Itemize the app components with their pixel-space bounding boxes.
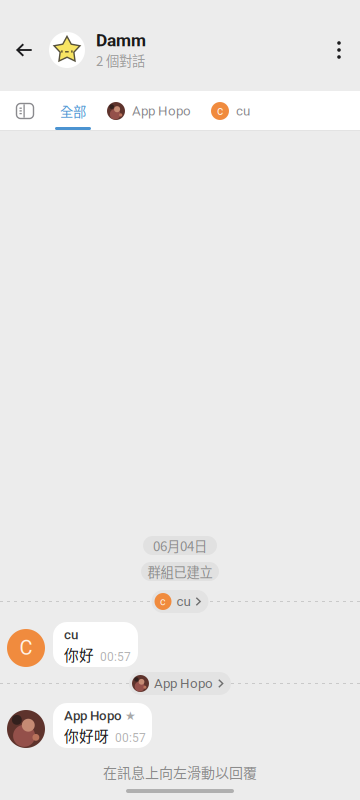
- staticText: 你好: [64, 644, 94, 665]
- staticText: App Hopo: [132, 103, 191, 119]
- button[interactable]: Back: [0, 22, 49, 78]
- button[interactable]: cu profile picture: [7, 629, 45, 667]
- button[interactable]: c: [151, 590, 208, 613]
- button[interactable]: App Hopo: [53, 703, 152, 748]
- staticText: ★: [125, 709, 136, 723]
- staticText: 00:57: [100, 650, 131, 664]
- button[interactable]: App Hopo: [129, 672, 231, 695]
- button[interactable]: App Hopo: [96, 91, 202, 131]
- staticText: c: [160, 595, 166, 608]
- button[interactable]: More options: [318, 22, 360, 78]
- staticText: C: [19, 636, 32, 660]
- staticText: c: [217, 104, 223, 118]
- button[interactable]: c: [202, 91, 259, 131]
- staticText: 群組已建立: [147, 562, 212, 581]
- staticText: cu: [64, 627, 78, 643]
- staticText: 2 個對話: [96, 50, 145, 70]
- button[interactable]: 全部: [50, 91, 96, 131]
- staticText: 全部: [60, 101, 86, 121]
- staticText: App Hopo: [64, 708, 122, 724]
- staticText: App Hopo: [154, 676, 213, 691]
- staticText: cu: [236, 103, 250, 119]
- staticText: 你好呀: [64, 725, 109, 746]
- staticText: 在訊息上向左滑動以回覆: [103, 762, 257, 782]
- button[interactable]: Damm: [49, 22, 318, 78]
- button[interactable]: App Hopo profile picture: [7, 710, 45, 748]
- staticText: cu: [176, 594, 190, 609]
- staticText: Damm: [96, 30, 146, 50]
- button[interactable]: cu: [53, 622, 138, 667]
- staticText: 06月04日: [153, 536, 207, 555]
- button[interactable]: Show sidebar: [0, 91, 50, 131]
- staticText: 00:57: [115, 731, 146, 745]
